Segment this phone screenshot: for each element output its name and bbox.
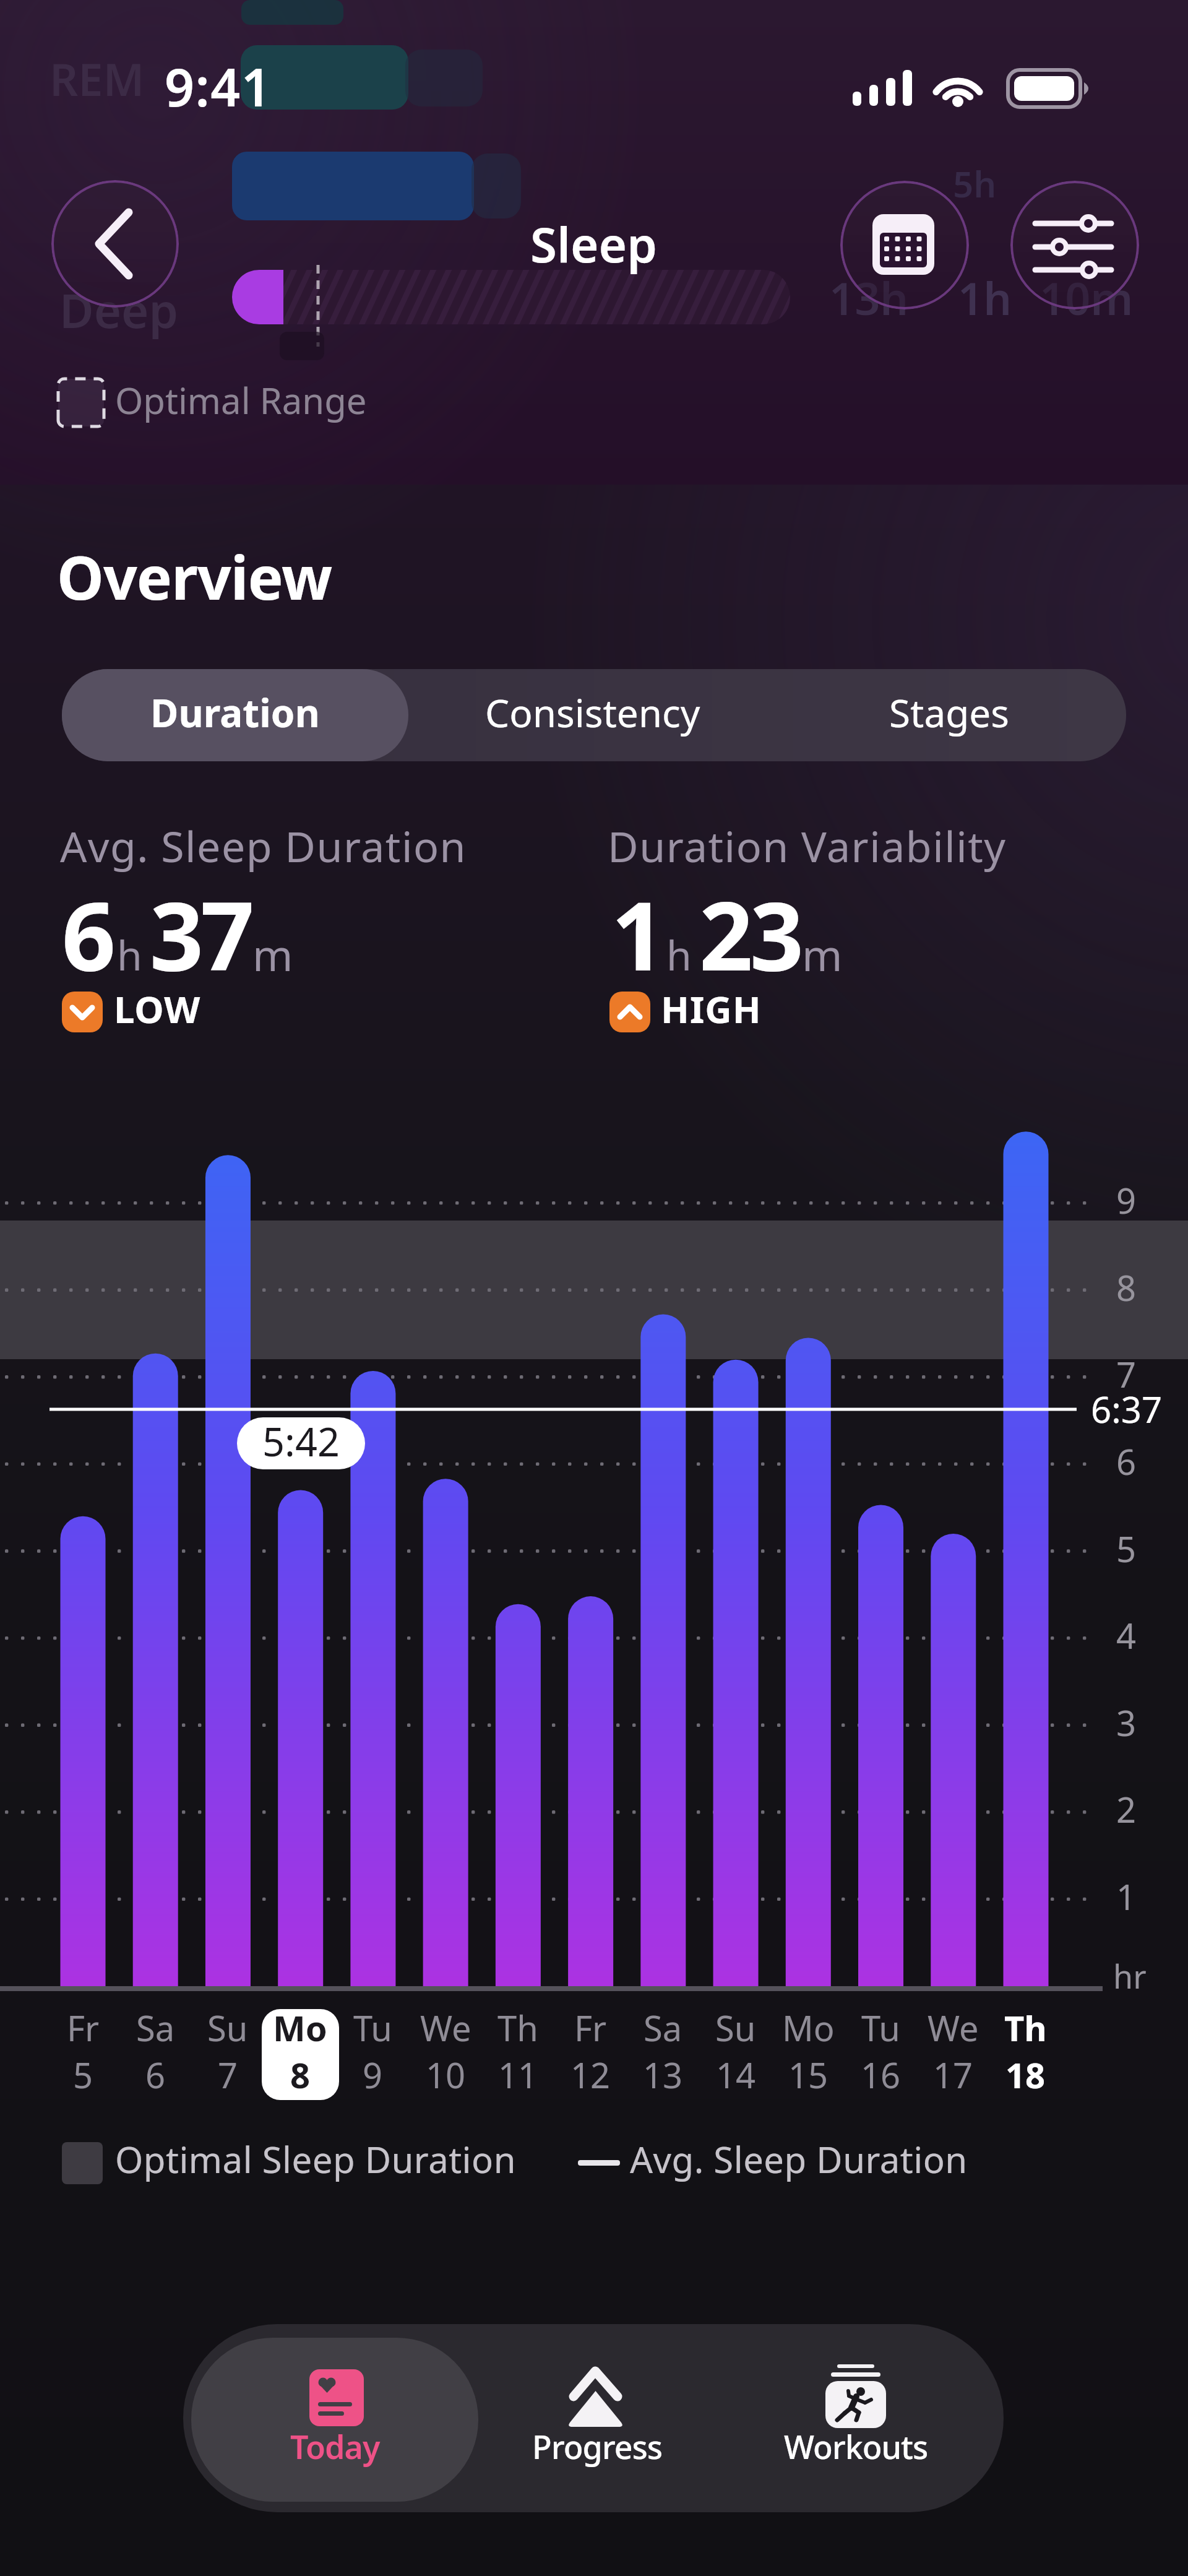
staticText: We bbox=[928, 2004, 979, 2051]
staticText: Mo bbox=[782, 2004, 835, 2051]
staticText: 8 bbox=[290, 2051, 311, 2098]
staticText: 6 bbox=[62, 870, 116, 998]
staticText: Deep bbox=[59, 278, 179, 342]
staticText: 3 bbox=[1116, 1699, 1137, 1746]
staticText: 5h bbox=[953, 159, 997, 208]
staticText: Sa bbox=[136, 2004, 175, 2051]
button[interactable]: Progress bbox=[517, 2338, 678, 2502]
staticText: HIGH bbox=[661, 983, 762, 1034]
staticText: 13 bbox=[643, 2051, 683, 2098]
staticText: 1 bbox=[611, 870, 665, 998]
staticText: 9:41 bbox=[165, 51, 272, 121]
button[interactable]: Today bbox=[191, 2338, 478, 2502]
staticText: We bbox=[420, 2004, 471, 2051]
staticText: 1h bbox=[958, 267, 1012, 328]
staticText: 5 bbox=[73, 2051, 93, 2098]
staticText: m bbox=[802, 925, 843, 983]
staticText: Duration Variability bbox=[608, 817, 1007, 875]
staticText: Su bbox=[207, 2004, 248, 2051]
staticText: Sa bbox=[643, 2004, 682, 2051]
staticText: Fr bbox=[67, 2004, 100, 2051]
staticText: 6 bbox=[145, 2051, 166, 2098]
staticText: Today bbox=[290, 2424, 380, 2468]
staticText: 11 bbox=[498, 2051, 538, 2098]
staticText: Stages bbox=[889, 686, 1009, 738]
staticText: Avg. Sleep Duration bbox=[60, 817, 467, 875]
staticText: 9 bbox=[363, 2051, 383, 2098]
staticText: Tu bbox=[353, 2004, 392, 2051]
staticText: h bbox=[666, 927, 692, 982]
staticText: Workouts bbox=[784, 2424, 928, 2468]
staticText: Th bbox=[1004, 2004, 1047, 2051]
staticText: Fr bbox=[574, 2004, 607, 2051]
staticText: 23 bbox=[699, 870, 801, 998]
staticText: 7 bbox=[1116, 1351, 1137, 1398]
staticText: Sleep bbox=[530, 211, 658, 277]
staticText: 7 bbox=[218, 2051, 238, 2098]
staticText: 15 bbox=[788, 2051, 829, 2098]
button[interactable] bbox=[840, 181, 969, 309]
staticText: Progress bbox=[532, 2424, 663, 2468]
staticText: 6:37 bbox=[1091, 1385, 1163, 1433]
staticText: 18 bbox=[1005, 2051, 1046, 2098]
staticText: 5 bbox=[1116, 1525, 1137, 1572]
staticText: LOW bbox=[114, 983, 201, 1034]
staticText: 5:42 bbox=[262, 1417, 340, 1467]
button[interactable]: Consistency bbox=[413, 669, 772, 761]
staticText: 4 bbox=[1116, 1612, 1137, 1659]
staticText: Th bbox=[497, 2004, 538, 2051]
staticText: Optimal Range bbox=[115, 376, 367, 425]
button[interactable] bbox=[1010, 181, 1139, 309]
staticText: Su bbox=[715, 2004, 756, 2051]
staticText: hr bbox=[1113, 1954, 1147, 1998]
staticText: Optimal Sleep Duration bbox=[115, 2135, 517, 2184]
staticText: 9 bbox=[1116, 1177, 1137, 1224]
button[interactable]: Stages bbox=[772, 669, 1126, 761]
staticText: Mo bbox=[273, 2004, 327, 2051]
staticText: Tu bbox=[861, 2004, 900, 2051]
staticText: 8 bbox=[1116, 1264, 1137, 1311]
button[interactable] bbox=[51, 180, 179, 308]
staticText: 10m bbox=[1039, 267, 1134, 328]
staticText: 10 bbox=[426, 2051, 466, 2098]
staticText: REM bbox=[49, 48, 145, 109]
staticText: Duration bbox=[150, 686, 320, 738]
staticText: 12 bbox=[570, 2051, 611, 2098]
button[interactable]: Duration bbox=[62, 669, 408, 761]
staticText: 17 bbox=[933, 2051, 973, 2098]
staticText: Overview bbox=[57, 536, 332, 616]
staticText: 1 bbox=[1116, 1873, 1137, 1920]
button[interactable]: Workouts bbox=[775, 2338, 936, 2502]
staticText: 16 bbox=[861, 2051, 901, 2098]
staticText: 2 bbox=[1116, 1786, 1137, 1833]
staticText: 6 bbox=[1116, 1438, 1137, 1485]
staticText: h bbox=[117, 927, 142, 982]
staticText: Consistency bbox=[485, 686, 700, 738]
staticText: 37 bbox=[150, 870, 251, 998]
staticText: Avg. Sleep Duration bbox=[630, 2135, 968, 2184]
staticText: 14 bbox=[716, 2051, 756, 2098]
staticText: 13h bbox=[829, 267, 909, 328]
staticText: m bbox=[252, 925, 293, 983]
